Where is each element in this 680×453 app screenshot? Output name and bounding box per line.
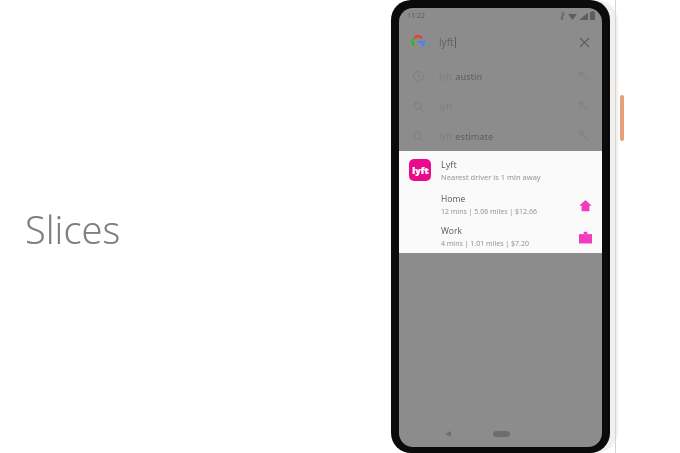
staticText: Slices [25, 203, 121, 255]
staticText: Home [441, 193, 466, 205]
staticText: austin [453, 70, 483, 82]
staticText: lyft [439, 70, 453, 82]
staticText: lyft [439, 130, 453, 142]
staticText: 12 mins | 5.06 miles | $12.66 [441, 207, 537, 217]
button[interactable]: Back [437, 423, 459, 445]
button[interactable]: Home [488, 426, 514, 442]
staticText: Lyft [441, 158, 457, 170]
staticText: lyft [412, 164, 429, 176]
button[interactable]: Clear search [572, 30, 596, 54]
staticText: 11:22 [407, 11, 425, 21]
staticText: lyft [439, 100, 453, 112]
staticText: estimate [453, 130, 494, 142]
button[interactable]: Ride home [572, 192, 598, 218]
button[interactable]: Ride to work [572, 224, 598, 250]
button[interactable]: lyft [399, 121, 602, 151]
button[interactable]: lyft [399, 151, 602, 189]
button[interactable]: Home [399, 189, 602, 221]
button[interactable]: Work [399, 221, 602, 253]
button[interactable]: lyft [399, 23, 602, 61]
staticText: Nearest driver is 1 min away [441, 172, 541, 182]
staticText: Work [441, 225, 462, 237]
staticText: 4 mins | 1.01 miles | $7.20 [441, 239, 529, 249]
staticText: lyft [439, 35, 454, 49]
button[interactable]: lyft [399, 61, 602, 91]
